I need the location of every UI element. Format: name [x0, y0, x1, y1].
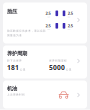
- staticText: 2.5: [45, 23, 50, 28]
- staticText: 2.5: [68, 10, 73, 16]
- staticText: 5000: [49, 63, 65, 72]
- staticText: 2.5: [45, 10, 50, 16]
- staticText: 公里: [20, 68, 26, 71]
- staticText: 机油: [7, 85, 17, 92]
- staticText: 上次更换时间: [7, 93, 25, 96]
- button[interactable]: 胎压: [3, 2, 87, 43]
- staticText: 181: [7, 63, 19, 72]
- staticText: 胎压数据仅供参考，请以实际: [7, 29, 46, 33]
- staticText: 2.5: [68, 23, 73, 28]
- staticText: 养护周期: [7, 50, 27, 57]
- button[interactable]: 机油: [3, 80, 87, 108]
- staticText: 测量值为准: [7, 34, 22, 37]
- staticText: bar: [47, 28, 50, 30]
- staticText: 保养间隔里程: [49, 59, 67, 62]
- staticText: 公里: [66, 68, 72, 71]
- staticText: bar: [68, 28, 71, 30]
- staticText: bar: [68, 16, 71, 18]
- staticText: 距下次保养: [7, 59, 22, 62]
- staticText: 胎压: [7, 8, 17, 15]
- button[interactable]: 养护周期: [3, 45, 87, 78]
